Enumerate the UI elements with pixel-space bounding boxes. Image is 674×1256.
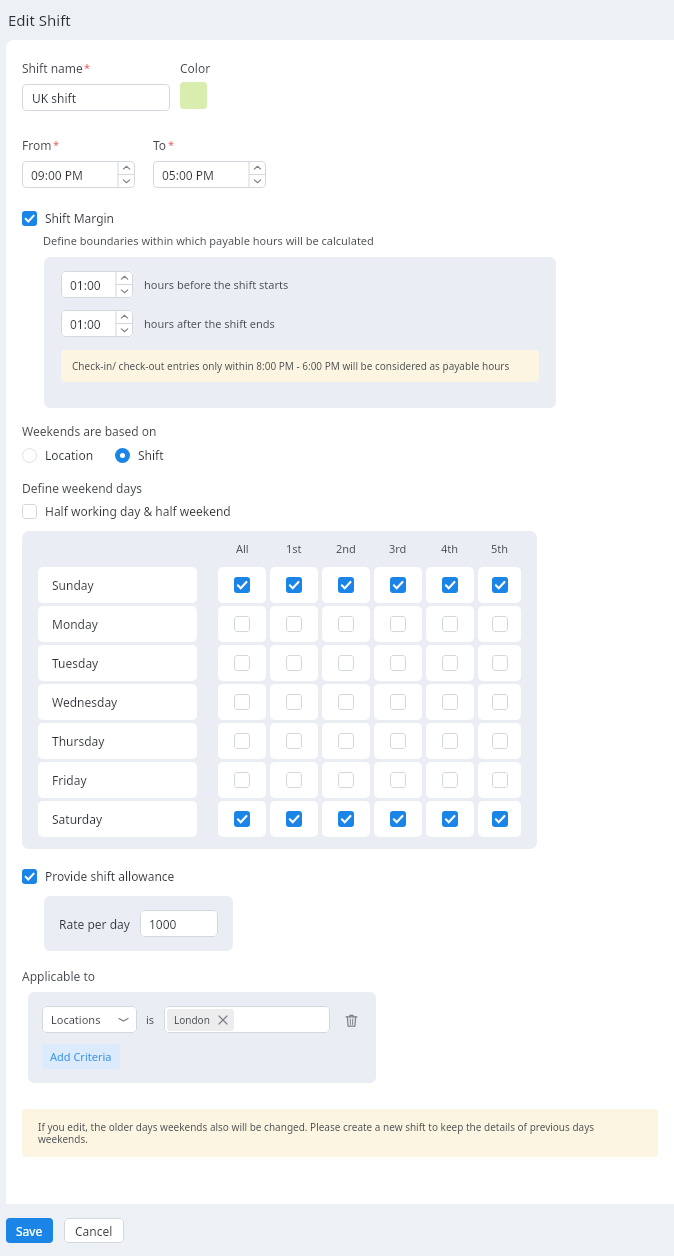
button[interactable]: 01:00: [61, 271, 133, 298]
button[interactable]: Checked: [234, 577, 250, 593]
button[interactable]: Checked: [22, 868, 175, 884]
button[interactable]: Unchecked: [426, 723, 474, 759]
button[interactable]: Unchecked: [322, 606, 370, 642]
button[interactable]: Unchecked: [22, 503, 231, 519]
button[interactable]: Checked: [270, 567, 318, 603]
button[interactable]: Wednesday: [38, 684, 197, 720]
button[interactable]: Unchecked: [492, 616, 508, 632]
button[interactable]: Unchecked: [338, 655, 354, 671]
button[interactable]: Checked: [270, 801, 318, 837]
button[interactable]: Unchecked: [218, 762, 266, 798]
button[interactable]: Checked: [426, 801, 474, 837]
button[interactable]: Checked: [374, 567, 422, 603]
button[interactable]: Unchecked: [390, 694, 406, 710]
button[interactable]: Checked: [442, 577, 458, 593]
button[interactable]: Save: [6, 1218, 53, 1243]
button[interactable]: Unchecked: [270, 645, 318, 681]
button[interactable]: Thursday: [38, 723, 197, 759]
button[interactable]: Unchecked: [322, 645, 370, 681]
button[interactable]: Checked: [322, 801, 370, 837]
button[interactable]: Unchecked: [286, 772, 302, 788]
button[interactable]: Checked: [390, 811, 406, 827]
button[interactable]: Checked: [218, 567, 266, 603]
button[interactable]: Checked: [234, 811, 250, 827]
button[interactable]: Unchecked: [234, 772, 250, 788]
button[interactable]: Checked: [492, 577, 508, 593]
button[interactable]: Unchecked: [478, 723, 521, 759]
button[interactable]: Unchecked: [322, 684, 370, 720]
button[interactable]: Unchecked: [442, 733, 458, 749]
button[interactable]: Unchecked: [390, 772, 406, 788]
button[interactable]: Checked: [338, 577, 354, 593]
button[interactable]: Unchecked: [322, 723, 370, 759]
button[interactable]: Checked: [478, 801, 521, 837]
button[interactable]: Unchecked: [218, 684, 266, 720]
button[interactable]: Checked: [390, 577, 406, 593]
button[interactable]: Unchecked: [218, 645, 266, 681]
button[interactable]: Unchecked: [390, 616, 406, 632]
button[interactable]: Unchecked: [374, 762, 422, 798]
button[interactable]: London: [164, 1006, 330, 1033]
button[interactable]: Checked: [286, 811, 302, 827]
button[interactable]: Unchecked: [234, 655, 250, 671]
button[interactable]: UK shift: [22, 84, 170, 111]
button[interactable]: Unchecked: [286, 694, 302, 710]
button[interactable]: Unchecked: [426, 684, 474, 720]
button[interactable]: Delete criteria: [341, 1010, 361, 1030]
button[interactable]: Checked: [22, 211, 37, 226]
button[interactable]: Locations: [42, 1006, 137, 1033]
button[interactable]: Unchecked: [442, 655, 458, 671]
button[interactable]: Pick color: [180, 82, 207, 109]
button[interactable]: Unchecked: [338, 694, 354, 710]
button[interactable]: 1000: [140, 910, 218, 937]
button[interactable]: Unchecked: [338, 772, 354, 788]
button[interactable]: Checked: [492, 811, 508, 827]
button[interactable]: Unchecked: [374, 723, 422, 759]
button[interactable]: Checked: [478, 567, 521, 603]
button[interactable]: Unchecked: [374, 684, 422, 720]
button[interactable]: Add Criteria: [42, 1044, 120, 1069]
button[interactable]: Unchecked: [478, 606, 521, 642]
button[interactable]: Shift: [115, 447, 164, 463]
button[interactable]: Unchecked: [374, 645, 422, 681]
button[interactable]: Unchecked: [338, 733, 354, 749]
button[interactable]: Unchecked: [22, 504, 37, 519]
button[interactable]: Checked: [286, 577, 302, 593]
button[interactable]: Tuesday: [38, 645, 197, 681]
button[interactable]: Unchecked: [374, 606, 422, 642]
button[interactable]: 05:00 PM: [153, 161, 266, 188]
button[interactable]: Unchecked: [492, 655, 508, 671]
button[interactable]: Friday: [38, 762, 197, 798]
button[interactable]: Unchecked: [426, 606, 474, 642]
button[interactable]: Unchecked: [322, 762, 370, 798]
button[interactable]: Cancel: [64, 1218, 124, 1243]
button[interactable]: Location: [22, 447, 94, 463]
button[interactable]: Unchecked: [492, 694, 508, 710]
button[interactable]: Unchecked: [390, 733, 406, 749]
button[interactable]: Unchecked: [426, 645, 474, 681]
button[interactable]: Unchecked: [234, 694, 250, 710]
button[interactable]: Sunday: [38, 567, 197, 603]
button[interactable]: Unchecked: [218, 723, 266, 759]
button[interactable]: Unchecked: [218, 606, 266, 642]
button[interactable]: Unchecked: [492, 733, 508, 749]
button[interactable]: Unchecked: [286, 733, 302, 749]
button[interactable]: Checked: [442, 811, 458, 827]
button[interactable]: Checked: [22, 210, 115, 226]
button[interactable]: Checked: [322, 567, 370, 603]
button[interactable]: Monday: [38, 606, 197, 642]
button[interactable]: Unchecked: [478, 645, 521, 681]
button[interactable]: Unchecked: [270, 723, 318, 759]
button[interactable]: Unchecked: [270, 606, 318, 642]
button[interactable]: Checked: [374, 801, 422, 837]
button[interactable]: Checked: [22, 869, 37, 884]
button[interactable]: Unchecked: [390, 655, 406, 671]
button[interactable]: Unchecked: [270, 684, 318, 720]
button[interactable]: Unchecked: [234, 616, 250, 632]
button[interactable]: 01:00: [61, 310, 133, 337]
button[interactable]: Unchecked: [478, 762, 521, 798]
button[interactable]: Checked: [218, 801, 266, 837]
button[interactable]: Unchecked: [338, 616, 354, 632]
button[interactable]: Unchecked: [234, 733, 250, 749]
button[interactable]: Unchecked: [492, 772, 508, 788]
